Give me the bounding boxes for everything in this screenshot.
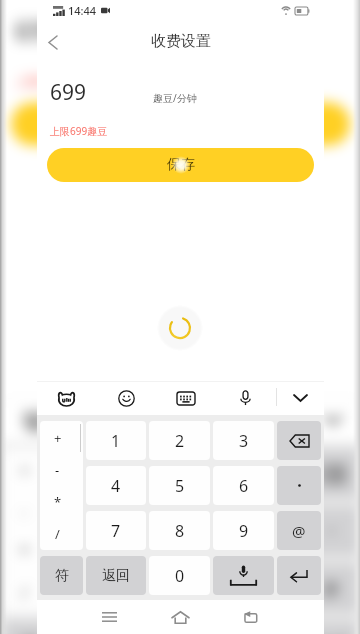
staticText: 返回 xyxy=(102,567,130,585)
staticText: 上限699趣豆 xyxy=(15,72,89,90)
button[interactable]: 1 xyxy=(61,449,137,499)
button[interactable]: Space / voice xyxy=(213,556,274,595)
staticText: 9 xyxy=(239,520,249,542)
button[interactable]: Emoji xyxy=(113,385,139,411)
button[interactable]: 保存 xyxy=(47,148,314,182)
button[interactable]: 7 xyxy=(86,511,146,550)
staticText: 8 xyxy=(175,520,185,542)
other: Delete xyxy=(318,466,345,483)
button[interactable]: Keyboard layout xyxy=(173,385,199,411)
button[interactable]: Emoji xyxy=(95,403,128,436)
button[interactable]: Keyboard layout xyxy=(171,403,204,436)
button[interactable]: Input method xyxy=(53,385,79,411)
button[interactable]: 8 xyxy=(149,511,210,550)
staticText: 收费设置 xyxy=(151,32,211,51)
button[interactable]: Voice input xyxy=(232,385,258,411)
staticText: 趣豆/分钟 xyxy=(153,91,197,105)
button[interactable]: 返回 xyxy=(86,556,146,595)
button[interactable]: 符 xyxy=(2,620,57,634)
button[interactable]: 6 xyxy=(222,506,299,556)
button[interactable]: 3 xyxy=(222,449,299,499)
button[interactable]: 8 xyxy=(141,563,218,613)
button[interactable]: Delete xyxy=(303,449,359,499)
button[interactable]: 9 xyxy=(213,511,274,550)
button[interactable]: @ xyxy=(303,563,359,613)
staticText: * xyxy=(54,493,62,511)
button[interactable]: 6 xyxy=(213,466,274,505)
button[interactable]: Back xyxy=(38,27,68,57)
button[interactable]: + xyxy=(2,449,57,491)
staticText: - xyxy=(55,461,60,479)
staticText: 7 xyxy=(111,520,121,542)
button[interactable]: 9 xyxy=(222,563,299,613)
staticText: @ xyxy=(292,521,306,541)
button[interactable] xyxy=(303,506,359,556)
button[interactable]: Enter xyxy=(277,556,321,595)
button[interactable]: 4 xyxy=(61,506,137,556)
staticText: 7 xyxy=(92,575,105,603)
button[interactable]: 3 xyxy=(213,421,274,460)
button[interactable]: Hide keyboard xyxy=(316,403,349,436)
staticText: 9 xyxy=(255,575,268,603)
button[interactable] xyxy=(277,466,321,505)
other: Enter xyxy=(290,569,308,582)
button[interactable]: 5 xyxy=(141,506,218,556)
button[interactable]: - xyxy=(40,454,83,486)
button[interactable]: Space / voice xyxy=(222,620,299,634)
staticText: 上限699趣豆 xyxy=(50,124,108,138)
staticText: 趣豆/分钟 xyxy=(146,30,202,48)
button[interactable]: / xyxy=(2,572,57,613)
button[interactable]: 4 xyxy=(86,466,146,505)
button[interactable]: / xyxy=(40,518,83,550)
staticText: 699 xyxy=(15,13,62,50)
staticText: 1 xyxy=(111,430,121,452)
button[interactable]: Back xyxy=(234,605,266,629)
button[interactable]: Home xyxy=(164,605,196,629)
button[interactable]: 7 xyxy=(61,563,137,613)
staticText: 2 xyxy=(174,460,186,488)
staticText: 5 xyxy=(175,475,185,497)
staticText: 8 xyxy=(174,575,186,603)
button[interactable]: 2 xyxy=(149,421,210,460)
staticText: 0 xyxy=(175,565,185,587)
button[interactable]: - xyxy=(2,491,57,532)
staticText: 2 xyxy=(175,430,185,452)
other: Space / voice xyxy=(228,564,259,587)
button[interactable]: 符 xyxy=(40,556,83,595)
staticText: 3 xyxy=(239,430,249,452)
staticText: 3 xyxy=(255,460,268,488)
button[interactable]: Enter xyxy=(303,620,359,634)
staticText: 4 xyxy=(111,475,121,497)
button[interactable]: 返回 xyxy=(61,620,137,634)
button[interactable]: @ xyxy=(277,511,321,550)
button[interactable]: 保存 xyxy=(11,102,350,146)
button[interactable]: Input method xyxy=(19,403,52,436)
staticText: @ xyxy=(322,576,340,601)
staticText: 699 xyxy=(50,78,87,107)
button[interactable]: * xyxy=(40,486,83,518)
button[interactable]: 2 xyxy=(141,449,218,499)
button[interactable]: + xyxy=(40,421,83,454)
staticText: 1 xyxy=(92,460,105,488)
other: Delete xyxy=(289,434,310,448)
staticText: 保存 xyxy=(167,156,195,174)
staticText: 符 xyxy=(55,567,69,585)
staticText: 14:44 xyxy=(68,3,97,18)
button[interactable]: 5 xyxy=(149,466,210,505)
button[interactable]: Voice input xyxy=(246,403,279,436)
button[interactable]: 0 xyxy=(141,620,218,634)
button[interactable]: 1 xyxy=(86,421,146,460)
button[interactable]: 0 xyxy=(149,556,210,595)
staticText: * xyxy=(20,540,30,563)
staticText: / xyxy=(55,525,60,543)
button[interactable]: Delete xyxy=(277,421,321,460)
staticText: 6 xyxy=(239,475,249,497)
button[interactable]: * xyxy=(2,532,57,572)
button[interactable]: Hide keyboard xyxy=(287,385,313,411)
button[interactable]: Recent apps xyxy=(93,605,125,629)
